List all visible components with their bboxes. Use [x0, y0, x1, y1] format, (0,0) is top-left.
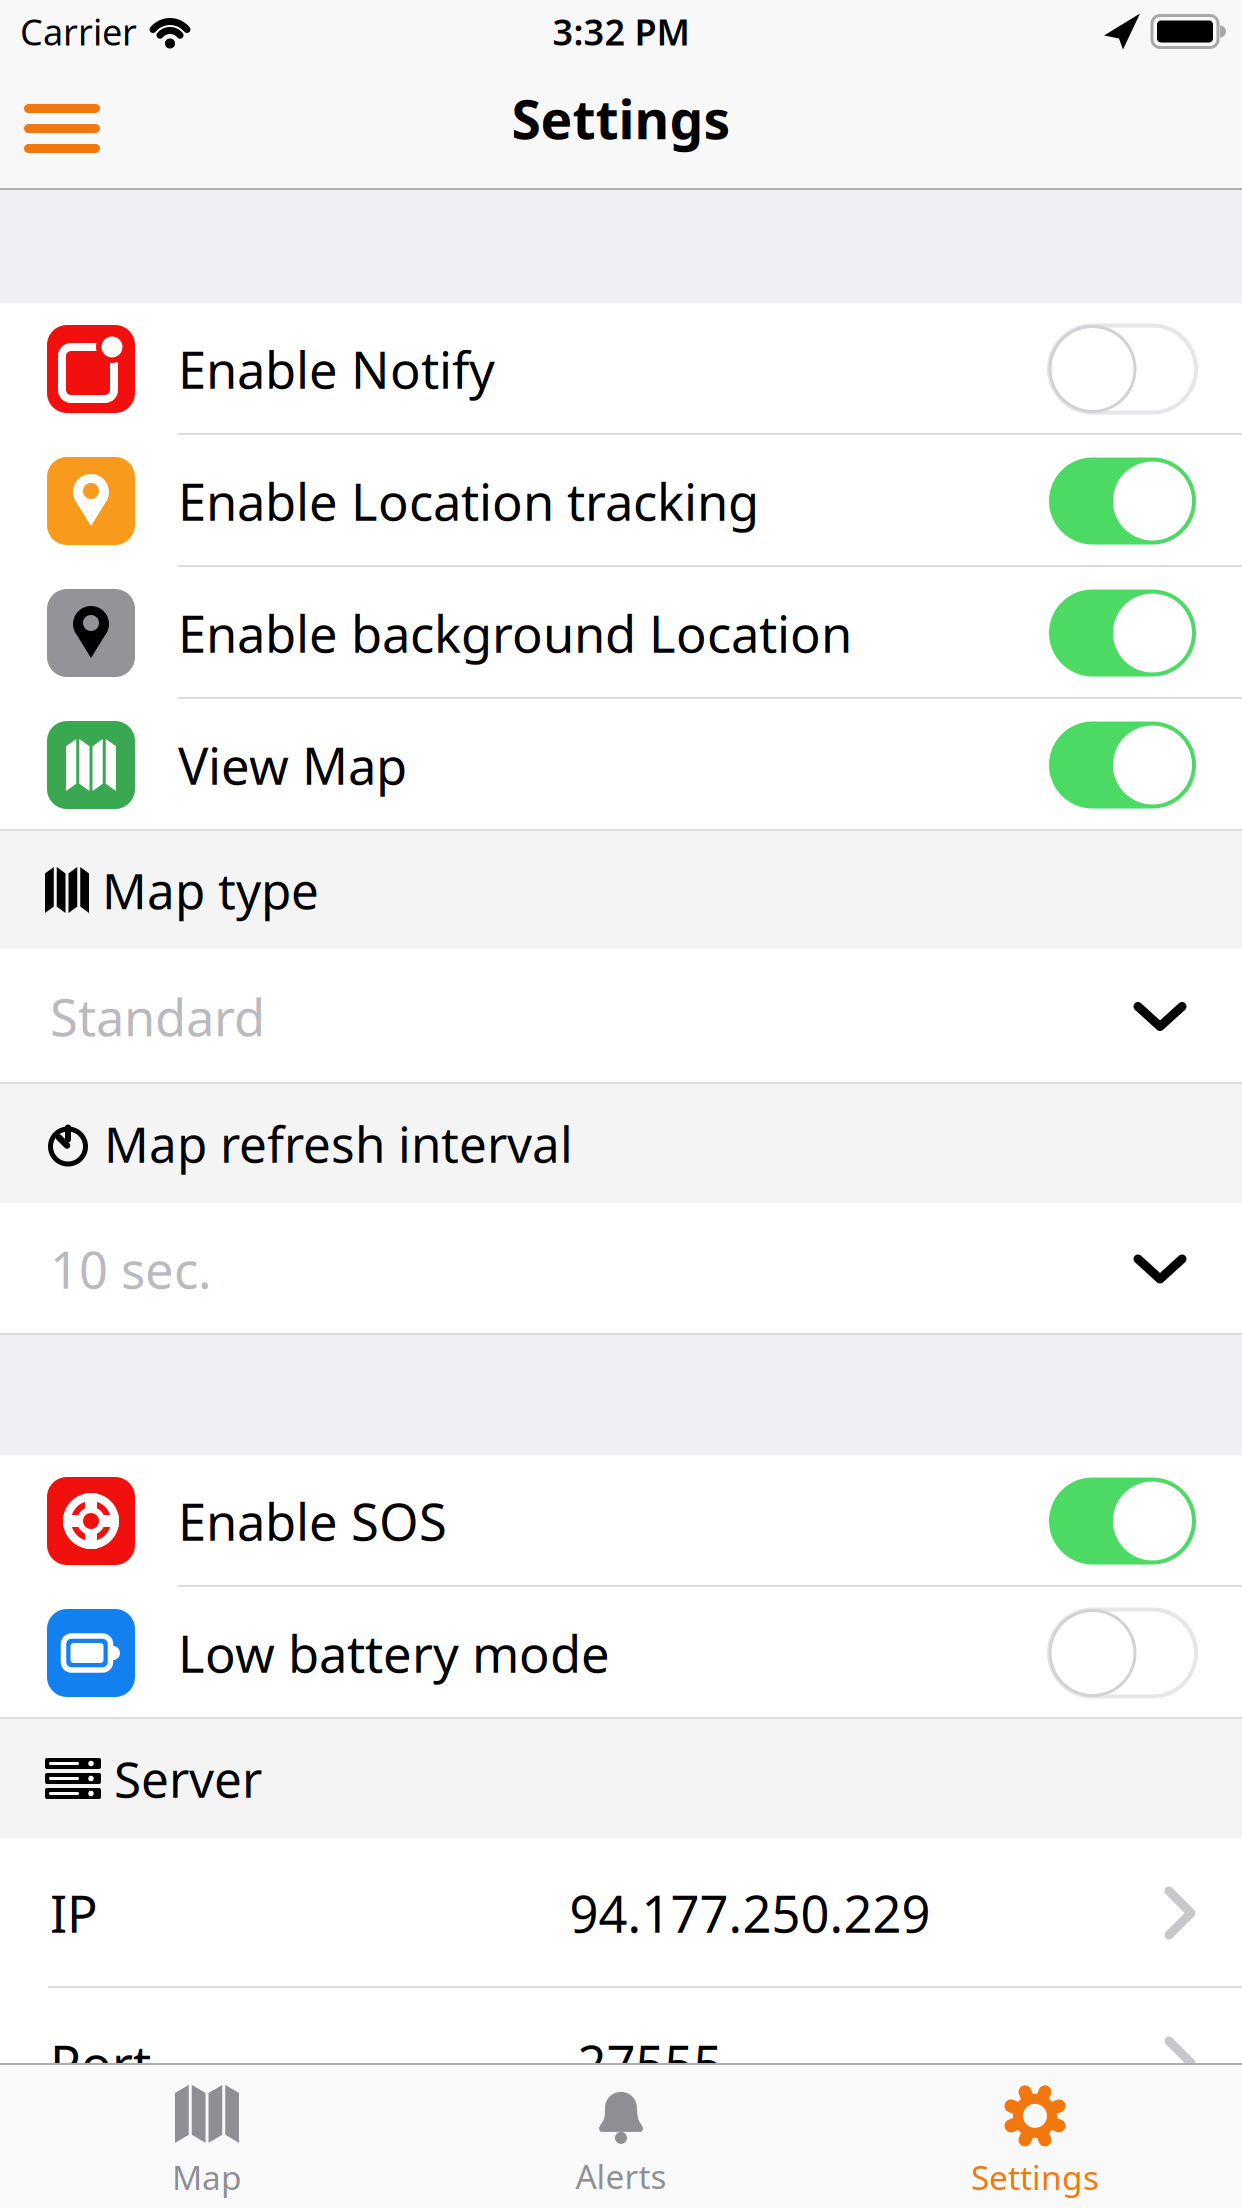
- staticText: 3:32 PM: [552, 8, 689, 55]
- button[interactable]: 10 sec.: [0, 1203, 1242, 1335]
- button[interactable]: Enable Notify: [0, 303, 1242, 435]
- staticText: Settings: [971, 2155, 1099, 2199]
- button[interactable]: Enable background Location: [0, 567, 1242, 699]
- staticText: Alerts: [575, 2154, 666, 2198]
- button[interactable]: Low battery mode: [0, 1587, 1242, 1719]
- staticText: Map refresh interval: [104, 1111, 573, 1176]
- staticText: Map type: [102, 857, 319, 923]
- button[interactable]: Port: [0, 1988, 1242, 2138]
- button[interactable]: Settings: [828, 2065, 1242, 2208]
- staticText: 10 sec.: [50, 1235, 212, 1303]
- button[interactable]: View Map: [0, 699, 1242, 831]
- staticText: Enable background Location: [178, 599, 852, 667]
- staticText: 27555: [577, 2029, 722, 2097]
- staticText: Enable Location tracking: [178, 467, 759, 535]
- staticText: Map: [172, 2155, 242, 2199]
- button[interactable]: Menu: [0, 83, 100, 168]
- staticText: Enable Notify: [178, 335, 495, 403]
- button[interactable]: Alerts: [414, 2065, 828, 2208]
- button[interactable]: Map: [0, 2065, 414, 2208]
- button[interactable]: Enable Location tracking: [0, 435, 1242, 567]
- staticText: Port: [50, 2029, 151, 2097]
- staticText: 94.177.250.229: [569, 1879, 930, 1947]
- staticText: Enable SOS: [178, 1487, 447, 1555]
- staticText: View Map: [178, 731, 407, 799]
- button[interactable]: Standard: [0, 949, 1242, 1084]
- staticText: Carrier: [20, 8, 137, 55]
- staticText: Standard: [50, 983, 265, 1050]
- button[interactable]: Enable SOS: [0, 1455, 1242, 1587]
- button[interactable]: IP: [0, 1838, 1242, 1988]
- staticText: Low battery mode: [178, 1619, 610, 1687]
- staticText: Settings: [511, 83, 730, 154]
- staticText: Server: [114, 1746, 262, 1811]
- staticText: IP: [50, 1879, 98, 1947]
